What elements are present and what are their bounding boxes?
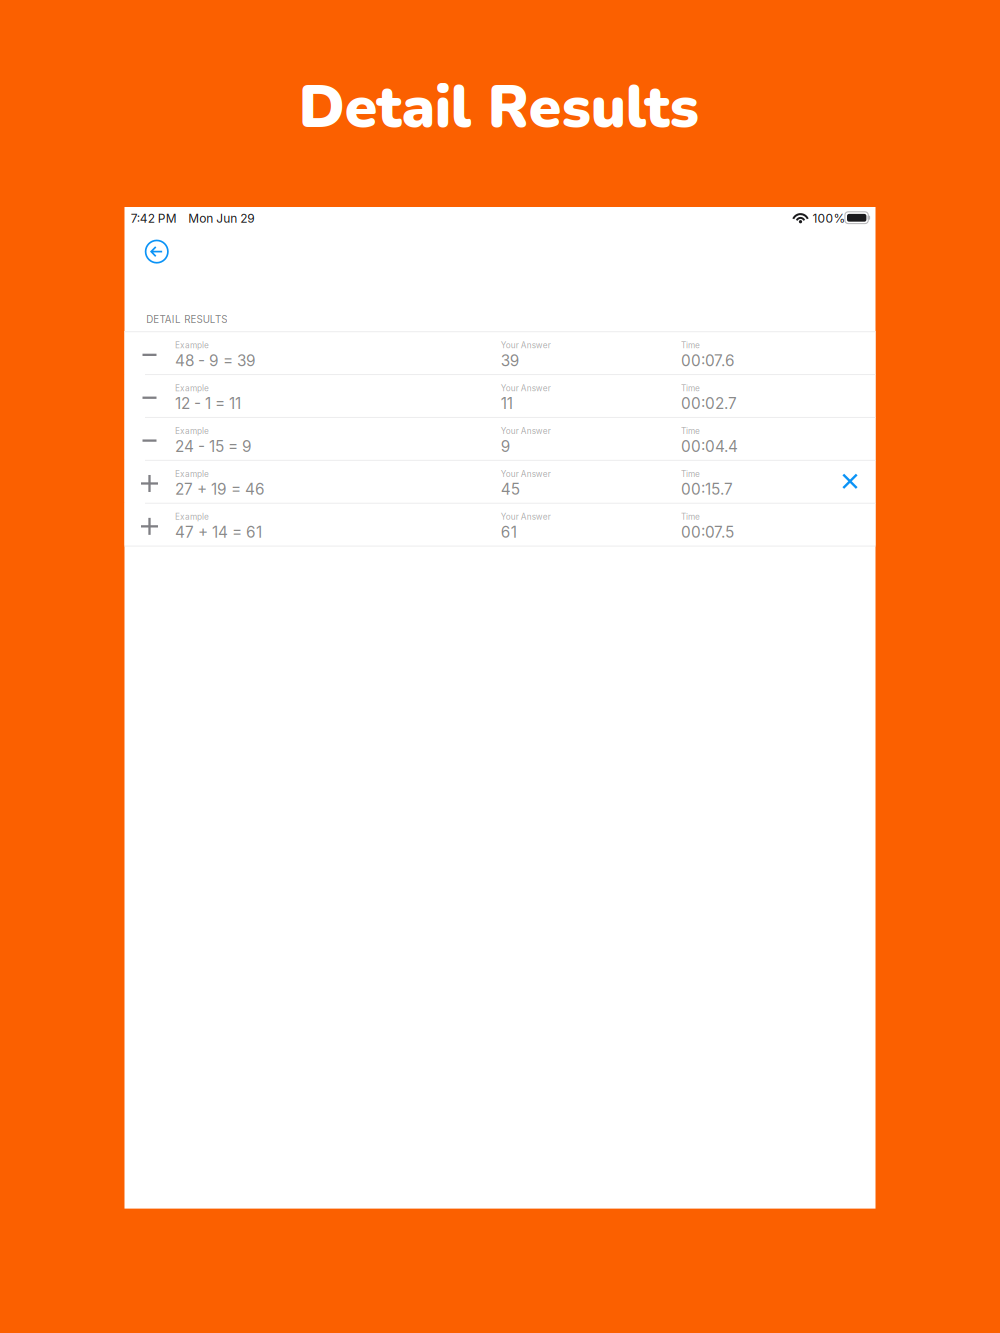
- button[interactable]: Example: [124, 417, 875, 460]
- staticText: 11: [501, 394, 513, 413]
- staticText: 00:15.7: [681, 480, 733, 498]
- staticText: Time: [681, 469, 700, 479]
- staticText: 39: [501, 351, 520, 370]
- staticText: Example: [175, 469, 209, 479]
- staticText: Detail Results: [299, 68, 699, 148]
- staticText: Mon Jun 29: [188, 211, 254, 225]
- button[interactable]: Example: [124, 460, 875, 503]
- staticText: Example: [175, 512, 209, 522]
- button[interactable]: Example: [124, 503, 875, 546]
- staticText: 61: [501, 523, 517, 541]
- staticText: Time: [681, 383, 700, 393]
- staticText: 9: [501, 437, 511, 456]
- staticText: 00:04.4: [681, 437, 738, 456]
- staticText: 47 + 14 = 61: [175, 523, 262, 541]
- staticText: Your Answer: [501, 340, 551, 350]
- staticText: 27 + 19 = 46: [175, 480, 265, 498]
- staticText: 00:07.6: [681, 351, 735, 370]
- staticText: 24 - 15 = 9: [175, 437, 252, 456]
- staticText: DETAIL RESULTS: [146, 314, 227, 325]
- staticText: Time: [681, 426, 700, 436]
- staticText: 12 - 1 = 11: [175, 394, 241, 413]
- staticText: 48 - 9 = 39: [175, 351, 256, 370]
- button[interactable]: Example: [124, 374, 875, 417]
- staticText: 00:02.7: [681, 394, 737, 413]
- staticText: Example: [175, 340, 209, 350]
- staticText: 00:07.5: [681, 523, 734, 541]
- staticText: Your Answer: [501, 383, 551, 393]
- button[interactable]: Example: [124, 331, 875, 374]
- staticText: 7:42 PM: [131, 211, 177, 225]
- staticText: Your Answer: [501, 512, 551, 522]
- staticText: Your Answer: [501, 426, 551, 436]
- staticText: Example: [175, 383, 209, 393]
- staticText: Time: [681, 340, 700, 350]
- button[interactable]: Back: [135, 230, 179, 274]
- staticText: Example: [175, 426, 209, 436]
- staticText: Time: [681, 512, 700, 522]
- staticText: Your Answer: [501, 469, 551, 479]
- staticText: 45: [501, 480, 520, 498]
- staticText: 100%: [812, 211, 845, 225]
